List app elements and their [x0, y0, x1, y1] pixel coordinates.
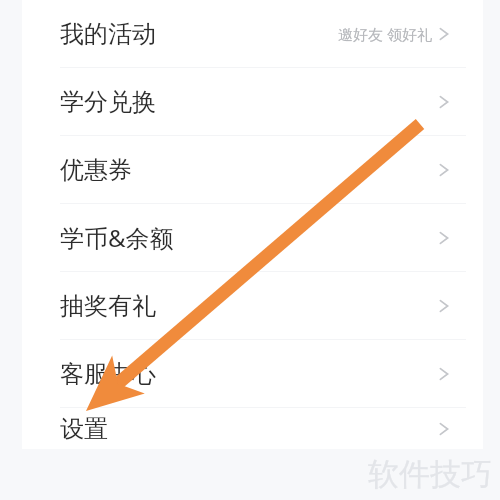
staticText: 客服中心: [60, 359, 156, 389]
staticText: 邀好友 领好礼: [338, 24, 432, 44]
button[interactable]: 学币&余额: [22, 204, 483, 271]
other: Annotation arrow pointing to 设置: [0, 0, 500, 500]
staticText: 学分兑换: [60, 87, 156, 117]
staticText: 软件技巧: [368, 455, 492, 494]
staticText: 我的活动: [60, 19, 156, 49]
staticText: 学币&余额: [60, 221, 174, 254]
staticText: 设置: [60, 414, 108, 444]
button[interactable]: 我的活动: [22, 0, 483, 67]
staticText: 优惠券: [60, 155, 132, 185]
button[interactable]: 优惠券: [22, 136, 483, 203]
button[interactable]: 抽奖有礼: [22, 272, 483, 339]
staticText: 抽奖有礼: [60, 291, 156, 321]
button[interactable]: 学分兑换: [22, 68, 483, 135]
button[interactable]: 客服中心: [22, 340, 483, 407]
button[interactable]: 设置: [22, 408, 483, 449]
